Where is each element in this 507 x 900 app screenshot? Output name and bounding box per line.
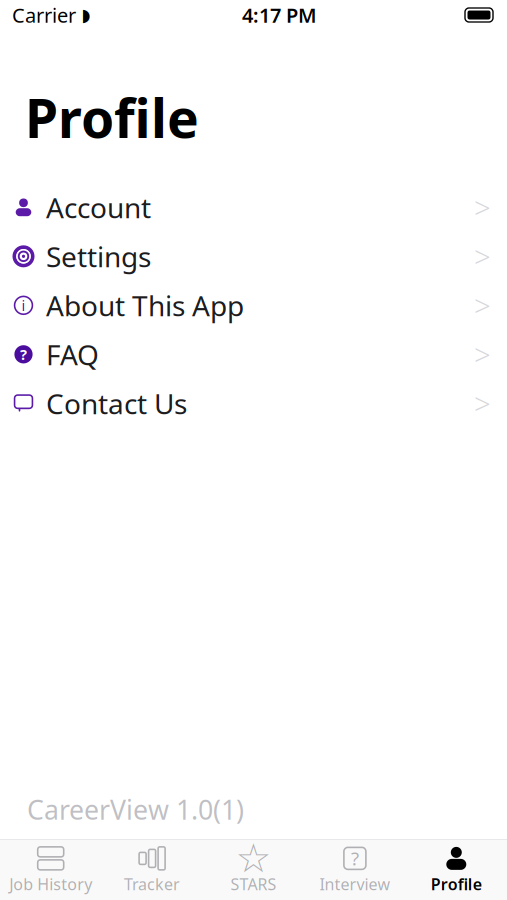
staticText: > (474, 286, 491, 325)
button[interactable]: ? (304, 842, 406, 898)
staticText: Account (46, 189, 151, 226)
staticText: CareerView 1.0(1) (27, 792, 244, 827)
staticText: About This App (46, 287, 244, 324)
staticText: Job History (9, 873, 92, 895)
staticText: i (21, 296, 25, 315)
staticText: Profile (25, 82, 199, 153)
button[interactable]: Profile (406, 842, 507, 898)
button[interactable]: Contact Us (0, 379, 507, 428)
staticText: > (474, 188, 491, 227)
button[interactable]: i (0, 281, 507, 330)
staticText: Carrier (12, 2, 76, 28)
staticText: > (474, 384, 491, 423)
button[interactable]: Account (0, 183, 507, 232)
button[interactable]: Tracker (101, 842, 203, 898)
staticText: STARS (230, 873, 276, 895)
staticText: ☆ (235, 836, 271, 881)
staticText: > (474, 335, 491, 374)
staticText: ? (20, 345, 27, 364)
staticText: Interview (319, 873, 390, 895)
staticText: Tracker (124, 873, 180, 895)
button[interactable]: ☆ (203, 842, 304, 898)
staticText: Profile (431, 873, 482, 895)
button[interactable]: Job History (0, 842, 101, 898)
button[interactable]: ? (0, 330, 507, 379)
staticText: 4:17 PM (242, 2, 317, 28)
staticText: FAQ (46, 336, 99, 373)
staticText: Contact Us (46, 385, 187, 422)
button[interactable]: Settings (0, 232, 507, 281)
staticText: Settings (46, 238, 151, 275)
staticText: > (474, 237, 491, 276)
staticText: ◗ (81, 5, 90, 25)
staticText: ? (351, 846, 359, 871)
